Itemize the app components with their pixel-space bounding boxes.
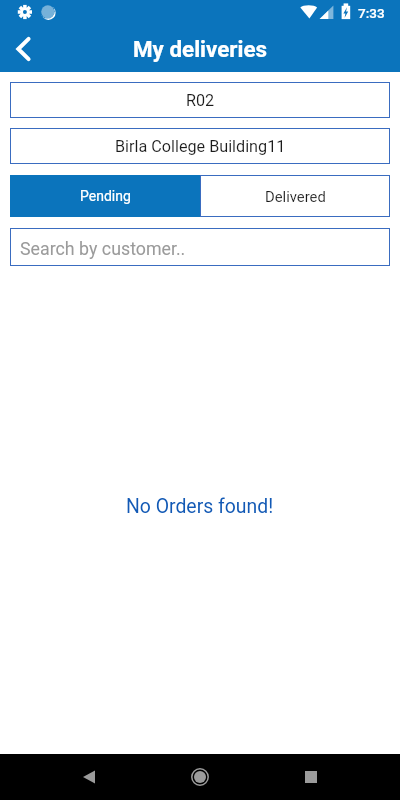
button[interactable]: Home	[182, 759, 218, 795]
staticText: Pending	[80, 188, 131, 204]
button[interactable]: Birla College Building11	[10, 128, 390, 164]
button[interactable]: Pending	[10, 175, 200, 217]
staticText: My deliveries	[133, 36, 268, 62]
staticText: Delivered	[265, 188, 326, 205]
button[interactable]: Search by customer..	[10, 228, 390, 266]
button[interactable]: Delivered	[200, 175, 390, 217]
staticText: Search by customer..	[20, 238, 186, 259]
staticText: R02	[186, 91, 215, 110]
staticText: Birla College Building11	[115, 137, 286, 156]
button[interactable]: R02	[10, 82, 390, 118]
staticText: 7:33	[358, 5, 385, 21]
staticText: No Orders found!	[126, 495, 274, 518]
button[interactable]: Back	[71, 759, 107, 795]
button[interactable]: Recent apps	[293, 759, 329, 795]
button[interactable]: Back	[0, 26, 46, 72]
